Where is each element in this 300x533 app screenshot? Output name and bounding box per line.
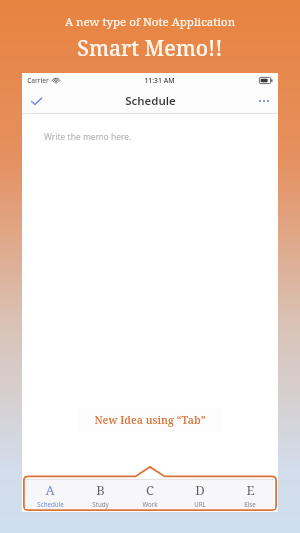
button[interactable]: Write the memo here. xyxy=(22,114,278,466)
staticText: 11:31 AM xyxy=(144,76,175,85)
staticText: Smart Memo!! xyxy=(0,34,300,63)
staticText: Work xyxy=(142,500,158,508)
button[interactable]: A xyxy=(25,479,75,509)
button[interactable]: More options xyxy=(250,88,278,114)
button[interactable]: C xyxy=(125,479,175,509)
staticText: B xyxy=(96,481,105,499)
staticText: Study xyxy=(92,500,109,508)
staticText: Carrier xyxy=(27,76,49,85)
staticText: A new type of Note Application xyxy=(0,14,300,30)
staticText: URL xyxy=(194,500,206,508)
button[interactable]: D xyxy=(175,479,225,509)
button[interactable]: B xyxy=(75,479,125,509)
staticText: New Idea using “Tab” xyxy=(94,413,206,427)
staticText: C xyxy=(146,481,154,499)
staticText: Schedule xyxy=(125,93,176,109)
staticText: Write the memo here. xyxy=(44,131,132,143)
staticText: A xyxy=(45,481,55,499)
staticText: Else xyxy=(244,500,256,508)
staticText: Schedule xyxy=(37,500,64,508)
button[interactable]: E xyxy=(225,479,275,509)
button[interactable]: Done xyxy=(22,88,50,114)
staticText: E xyxy=(246,481,255,499)
button[interactable]: New Idea using “Tab” xyxy=(78,408,222,432)
staticText: D xyxy=(195,481,205,499)
